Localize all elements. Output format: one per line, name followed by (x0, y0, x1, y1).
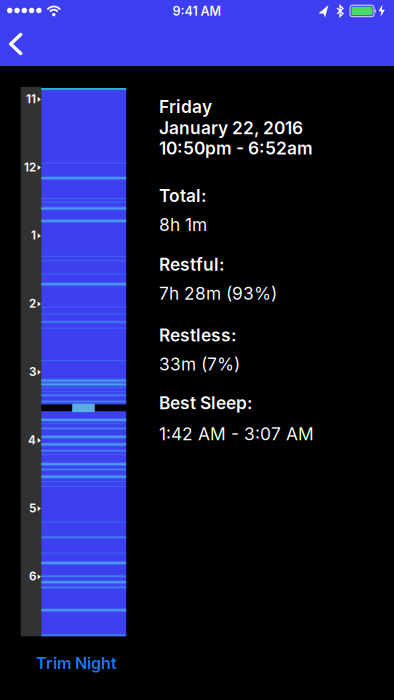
staticText: 2 (29, 297, 36, 311)
button[interactable]: Trim Night (36, 653, 117, 673)
staticText: 12 (24, 160, 36, 174)
staticText: 33m (7%) (159, 354, 240, 375)
staticText: Restful: (159, 254, 225, 275)
staticText: 4 (28, 433, 36, 447)
staticText: Restless: (159, 325, 237, 346)
staticText: January 22, 2016 (159, 117, 303, 138)
staticText: 1:42 AM - 3:07 AM (159, 423, 314, 444)
staticText: 5 (29, 501, 36, 515)
button[interactable]: Back (7, 31, 25, 57)
staticText: Friday (159, 96, 212, 117)
staticText: Best Sleep: (159, 392, 253, 413)
staticText: 9:41 AM (172, 3, 221, 19)
staticText: 6 (29, 569, 36, 583)
staticText: 11 (26, 92, 36, 106)
staticText: 8h 1m (159, 214, 207, 235)
staticText: 1 (31, 228, 36, 242)
staticText: 3 (29, 365, 36, 379)
staticText: 10:50pm - 6:52am (159, 138, 313, 159)
staticText: 7h 28m (93%) (159, 283, 277, 304)
staticText: Trim Night (36, 653, 117, 673)
staticText: Total: (159, 185, 207, 206)
